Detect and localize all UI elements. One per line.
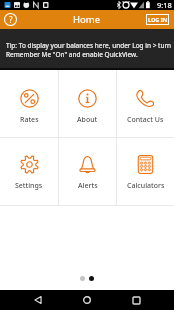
- button[interactable]: About: [59, 70, 116, 137]
- staticText: 9:18: [157, 0, 172, 10]
- button[interactable]: Calculators: [117, 138, 174, 205]
- staticText: About: [77, 115, 98, 125]
- staticText: Contact Us: [127, 115, 164, 125]
- staticText: Settings: [15, 181, 43, 191]
- button[interactable]: Help: [3, 12, 18, 27]
- staticText: ?: [9, 14, 13, 25]
- button[interactable]: Home: [79, 292, 95, 308]
- button[interactable]: Settings: [0, 138, 58, 205]
- staticText: Rates: [20, 115, 39, 125]
- staticText: Tip: To display your balances here, unde…: [6, 41, 172, 59]
- staticText: Alerts: [78, 181, 98, 191]
- staticText: Calculators: [127, 181, 165, 191]
- button[interactable]: Contact Us: [117, 70, 174, 137]
- button[interactable]: Recents: [128, 292, 144, 308]
- button[interactable]: Back: [30, 292, 46, 308]
- staticText: Home: [73, 13, 101, 26]
- staticText: LOG IN: [148, 16, 168, 23]
- button[interactable]: Rates: [0, 70, 58, 137]
- button[interactable]: LOG IN: [146, 14, 169, 25]
- button[interactable]: Alerts: [59, 138, 116, 205]
